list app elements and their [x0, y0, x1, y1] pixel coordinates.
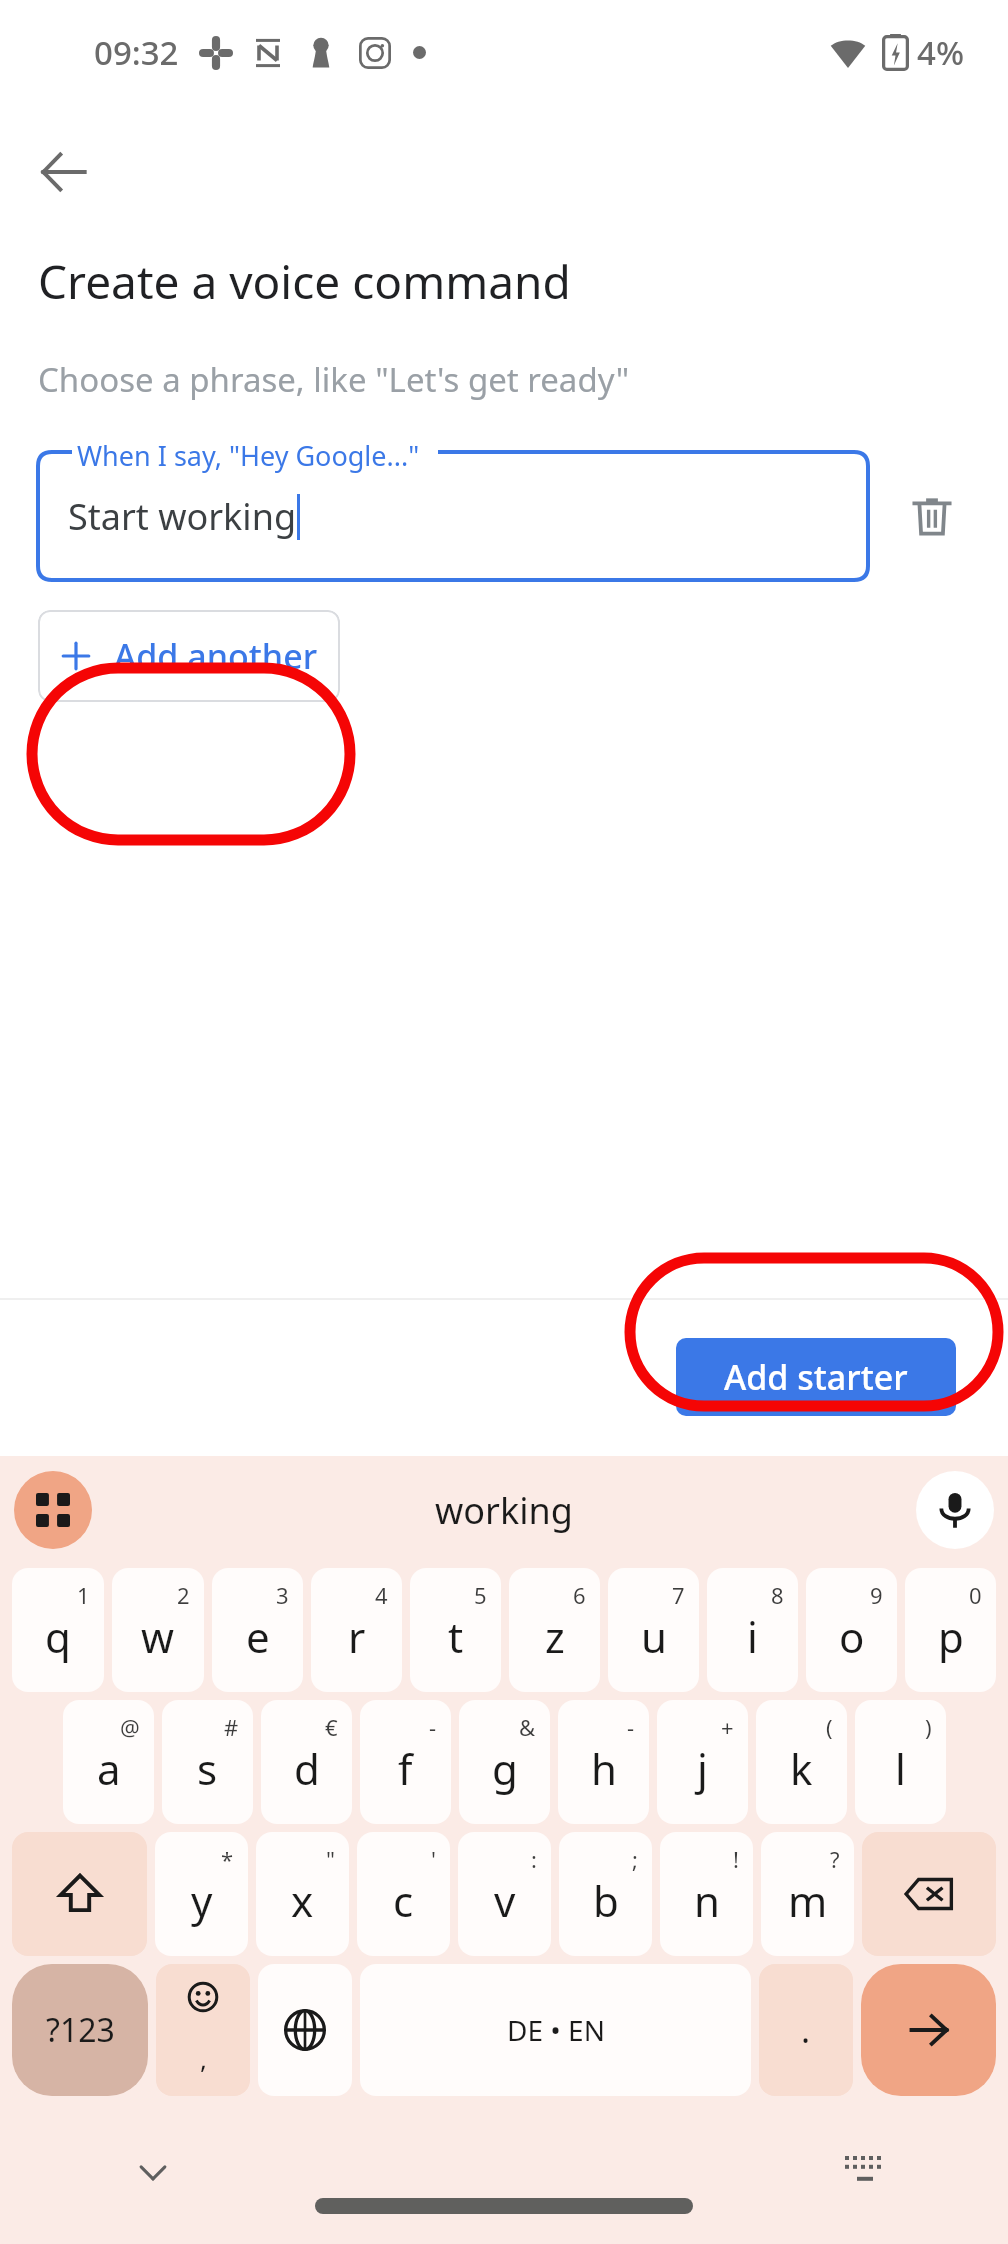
button[interactable]: & — [459, 1700, 550, 1824]
staticText: r — [348, 1608, 366, 1665]
button[interactable]: ! — [660, 1832, 753, 1956]
button[interactable]: ; — [559, 1832, 652, 1956]
button[interactable]: Emoji — [156, 1964, 250, 2096]
staticText: d — [294, 1740, 320, 1797]
staticText: b — [593, 1872, 619, 1929]
staticText: j — [697, 1740, 708, 1797]
staticText: t — [448, 1608, 464, 1665]
staticText: k — [790, 1740, 813, 1797]
button[interactable]: 4 — [311, 1568, 402, 1692]
button[interactable]: ' — [357, 1832, 450, 1956]
staticText: ' — [431, 1844, 436, 1874]
button[interactable]: working — [435, 1486, 573, 1535]
button[interactable]: @ — [63, 1700, 154, 1824]
staticText: : — [531, 1844, 537, 1874]
button[interactable]: € — [261, 1700, 352, 1824]
button[interactable]: 0 — [905, 1568, 996, 1692]
staticText: 0 — [969, 1580, 982, 1610]
staticText: € — [325, 1712, 338, 1742]
staticText: 2 — [177, 1580, 190, 1610]
staticText: p — [938, 1608, 964, 1665]
staticText: ? — [830, 1844, 840, 1874]
button[interactable]: 3 — [212, 1568, 303, 1692]
staticText: 4 — [375, 1580, 388, 1610]
button[interactable]: ( — [756, 1700, 847, 1824]
staticText: . — [801, 2007, 811, 2053]
button[interactable]: Change language — [258, 1964, 352, 2096]
staticText: 8 — [771, 1580, 784, 1610]
button[interactable]: 7 — [608, 1568, 699, 1692]
button[interactable]: Switch keyboard — [830, 2137, 900, 2207]
staticText: u — [641, 1608, 667, 1665]
button[interactable]: Back — [22, 130, 106, 214]
button[interactable]: Add starter — [676, 1338, 956, 1416]
staticText: # — [224, 1712, 239, 1742]
staticText: s — [197, 1740, 218, 1797]
staticText: DE • EN — [507, 2011, 605, 2049]
staticText: w — [141, 1608, 175, 1665]
staticText: * — [221, 1844, 234, 1874]
button[interactable]: * — [155, 1832, 248, 1956]
button[interactable]: - — [558, 1700, 649, 1824]
staticText: 3 — [276, 1580, 289, 1610]
button[interactable]: : — [458, 1832, 551, 1956]
staticText: x — [291, 1872, 314, 1929]
button[interactable]: 2 — [112, 1568, 204, 1692]
button[interactable]: 1 — [12, 1568, 104, 1692]
button[interactable]: Add another — [38, 610, 340, 702]
staticText: a — [97, 1740, 121, 1797]
button[interactable]: # — [162, 1700, 253, 1824]
button[interactable]: Hide keyboard — [118, 2137, 188, 2207]
staticText: 5 — [474, 1580, 487, 1610]
staticText: f — [398, 1740, 413, 1797]
button[interactable]: Delete — [894, 478, 970, 554]
staticText: v — [494, 1872, 516, 1929]
button[interactable]: ) — [855, 1700, 946, 1824]
staticText: ( — [826, 1712, 833, 1742]
staticText: , — [200, 2041, 207, 2076]
button[interactable]: DE • EN — [360, 1964, 751, 2096]
staticText: 6 — [573, 1580, 586, 1610]
staticText: h — [591, 1740, 617, 1797]
staticText: " — [326, 1844, 335, 1874]
staticText: ) — [925, 1712, 932, 1742]
staticText: i — [747, 1608, 758, 1665]
button[interactable]: Toolbar — [14, 1471, 92, 1549]
button[interactable]: 5 — [410, 1568, 501, 1692]
staticText: 1 — [77, 1580, 90, 1610]
staticText: Add another — [114, 633, 318, 679]
button[interactable]: Voice input — [916, 1471, 994, 1549]
staticText: l — [895, 1740, 906, 1797]
button[interactable]: - — [360, 1700, 451, 1824]
button[interactable]: Enter — [861, 1964, 996, 2096]
button[interactable]: ? — [761, 1832, 854, 1956]
staticText: q — [45, 1608, 71, 1665]
staticText: y — [191, 1872, 213, 1929]
staticText: e — [246, 1608, 270, 1665]
button[interactable]: 6 — [509, 1568, 600, 1692]
staticText: When I say, "Hey Google..." — [77, 437, 420, 474]
button[interactable]: + — [657, 1700, 748, 1824]
staticText: ; — [632, 1844, 638, 1874]
staticText: g — [492, 1740, 518, 1797]
button[interactable]: 9 — [806, 1568, 897, 1692]
button[interactable]: ?123 — [12, 1964, 148, 2096]
button[interactable]: . — [759, 1964, 853, 2096]
staticText: o — [839, 1608, 865, 1665]
staticText: z — [545, 1608, 565, 1665]
staticText: Create a voice command — [38, 250, 571, 313]
staticText: ! — [733, 1844, 739, 1874]
staticText: m — [788, 1872, 828, 1929]
staticText: 9 — [870, 1580, 883, 1610]
staticText: + — [721, 1712, 734, 1742]
button[interactable]: Backspace — [862, 1832, 996, 1956]
staticText: @ — [120, 1712, 140, 1742]
staticText: Start working — [68, 492, 297, 541]
button[interactable]: When I say, "Hey Google..." — [38, 452, 868, 580]
staticText: & — [519, 1712, 536, 1742]
button[interactable]: Shift — [12, 1832, 147, 1956]
staticText: Add starter — [724, 1354, 908, 1400]
staticText: Choose a phrase, like "Let's get ready" — [38, 357, 630, 402]
button[interactable]: 8 — [707, 1568, 798, 1692]
button[interactable]: " — [256, 1832, 349, 1956]
